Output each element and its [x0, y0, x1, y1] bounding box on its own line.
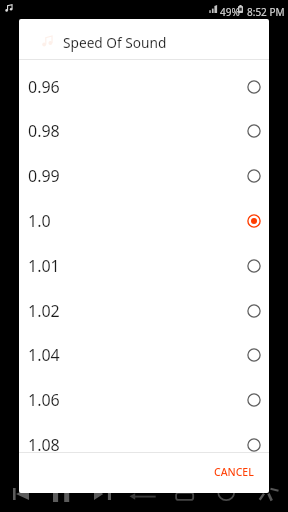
button[interactable]: 1.06 — [19, 377, 269, 422]
staticText: 0.98 — [28, 120, 60, 142]
staticText: Speed Of Sound — [63, 33, 167, 52]
button[interactable]: 1.08 — [19, 422, 269, 452]
button[interactable]: Recent apps — [216, 487, 237, 503]
staticText: 1.0 — [28, 210, 51, 232]
button[interactable]: 1.01 — [19, 243, 269, 288]
button[interactable]: 1.02 — [19, 288, 269, 333]
staticText: 0.99 — [28, 165, 60, 187]
staticText: 1.08 — [28, 434, 60, 452]
button[interactable]: Accessibility — [257, 487, 280, 502]
staticText: 0.96 — [28, 76, 60, 98]
staticText: 1.01 — [28, 255, 60, 277]
staticText: CANCEL — [214, 465, 254, 479]
button[interactable]: Previous track — [13, 488, 29, 500]
button[interactable]: Pause — [53, 490, 69, 502]
staticText: 49% — [220, 5, 240, 19]
button[interactable]: 0.99 — [19, 153, 269, 198]
button[interactable]: 1.04 — [19, 332, 269, 377]
staticText: 1.04 — [28, 344, 60, 366]
button[interactable]: Back — [129, 493, 157, 500]
button[interactable]: 0.96 — [19, 64, 269, 109]
button[interactable]: Next track — [94, 488, 111, 500]
button[interactable]: Home — [175, 492, 195, 502]
staticText: 1.02 — [28, 300, 60, 322]
button[interactable]: CANCEL — [206, 458, 262, 486]
staticText: 8:52 PM — [247, 5, 285, 19]
staticText: 1.06 — [28, 389, 60, 411]
button[interactable]: 0.98 — [19, 108, 269, 153]
button[interactable]: 1.0 — [19, 198, 269, 243]
